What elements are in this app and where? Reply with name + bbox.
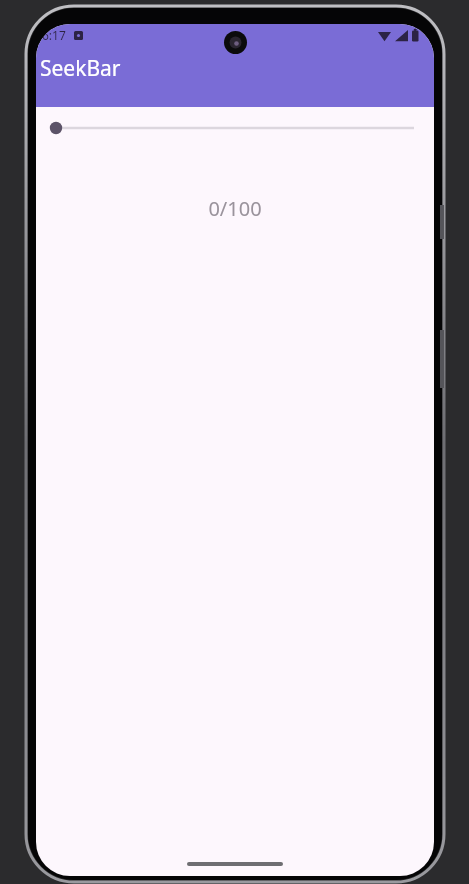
button[interactable]	[36, 107, 434, 149]
other: Status icons	[378, 28, 424, 42]
staticText: SeekBar	[40, 54, 121, 83]
staticText: 0/100	[36, 195, 434, 222]
staticText: 6:17	[42, 27, 66, 43]
